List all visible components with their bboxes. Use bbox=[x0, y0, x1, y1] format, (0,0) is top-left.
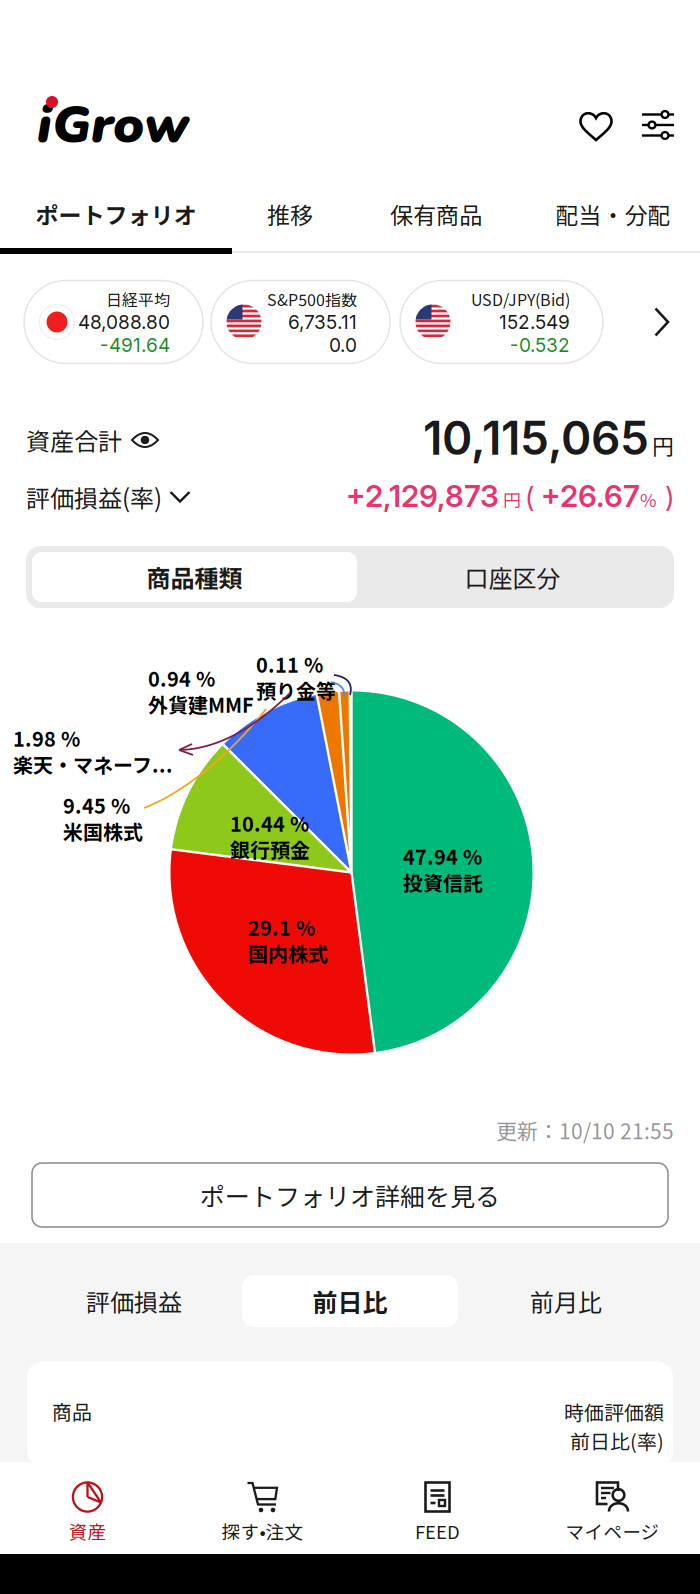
staticText: 資産合計 bbox=[26, 423, 122, 457]
button[interactable]: More markets bbox=[653, 307, 670, 337]
staticText: 円 bbox=[652, 429, 674, 461]
staticText: 6,735.11 bbox=[288, 311, 357, 334]
staticText: 配当・分配 bbox=[555, 197, 670, 231]
staticText: 9.45 % bbox=[63, 790, 130, 819]
button[interactable]: 推移 bbox=[235, 186, 345, 242]
button[interactable]: 保有商品 bbox=[361, 186, 511, 242]
staticText: 更新：10/10 21:55 bbox=[496, 1115, 674, 1145]
staticText: 10,115,065 bbox=[423, 410, 649, 466]
staticText: S&P500指数 bbox=[267, 287, 357, 311]
staticText: 前月比 bbox=[530, 1284, 602, 1318]
staticText: マイページ bbox=[565, 1518, 659, 1544]
staticText: 資産 bbox=[68, 1518, 106, 1544]
button[interactable]: Settings bbox=[642, 110, 674, 139]
staticText: 米国株式 bbox=[63, 816, 143, 845]
staticText: 日経平均 bbox=[106, 287, 170, 311]
staticText: FEED bbox=[415, 1518, 460, 1544]
staticText: 0.0 bbox=[329, 334, 357, 357]
staticText: 前日比(率) bbox=[570, 1426, 664, 1455]
button[interactable]: Hide balance bbox=[131, 430, 159, 450]
staticText: 楽天・マネーフ... bbox=[13, 749, 173, 778]
button[interactable]: S&P500指数 bbox=[211, 280, 390, 363]
staticText: 商品種類 bbox=[146, 560, 242, 594]
staticText: 銀行預金 bbox=[230, 834, 310, 863]
button[interactable]: USD/JPY(Bid) bbox=[400, 280, 603, 363]
button[interactable]: Expand bbox=[169, 490, 191, 504]
staticText: % bbox=[640, 486, 657, 512]
button[interactable]: 前月比 bbox=[458, 1275, 674, 1327]
button[interactable]: 前日比 bbox=[242, 1275, 458, 1327]
staticText: +2,129,873 bbox=[346, 478, 499, 514]
button[interactable]: ポートフォリオ詳細を見る bbox=[32, 1163, 668, 1227]
staticText: -491.64 bbox=[100, 334, 170, 357]
staticText: USD/JPY(Bid) bbox=[471, 287, 570, 311]
staticText: 47.94 % bbox=[403, 841, 482, 870]
staticText: -0.532 bbox=[510, 334, 570, 357]
staticText: 前日比 bbox=[312, 1283, 387, 1319]
staticText: +26.67 bbox=[534, 478, 640, 514]
staticText: 円 bbox=[499, 486, 525, 512]
staticText: 外貨建MMF bbox=[148, 689, 254, 718]
button[interactable]: 評価損益 bbox=[26, 1275, 242, 1327]
button[interactable]: 口座区分 bbox=[357, 552, 668, 602]
staticText: ポートフォリオ詳細を見る bbox=[200, 1177, 500, 1213]
staticText: 0.94 % bbox=[148, 663, 215, 692]
staticText: 152.549 bbox=[499, 311, 570, 334]
button[interactable]: 日経平均 bbox=[24, 280, 203, 363]
button[interactable]: 資産 bbox=[0, 1462, 175, 1554]
button[interactable]: ポートフォリオ bbox=[0, 186, 232, 242]
staticText: 時価評価額 bbox=[564, 1397, 664, 1426]
staticText: iGrow bbox=[37, 89, 189, 160]
staticText: 投資信託 bbox=[403, 867, 483, 896]
staticText: ポートフォリオ bbox=[35, 197, 196, 231]
button[interactable]: FEED bbox=[350, 1462, 525, 1554]
staticText: 口座区分 bbox=[464, 560, 560, 594]
staticText: 10.44 % bbox=[230, 808, 309, 837]
staticText: 国内株式 bbox=[248, 938, 328, 967]
staticText: 0.11 % bbox=[256, 649, 323, 678]
staticText: 推移 bbox=[267, 197, 313, 231]
staticText: 商品 bbox=[52, 1396, 92, 1425]
staticText: 48,088.80 bbox=[78, 311, 170, 334]
button[interactable]: 探す•注文 bbox=[175, 1462, 350, 1554]
staticText: 預り金等 bbox=[256, 675, 336, 704]
staticText: 29.1 % bbox=[248, 912, 315, 941]
staticText: 評価損益(率) bbox=[26, 480, 162, 514]
staticText: 評価損益 bbox=[86, 1284, 182, 1318]
staticText: 保有商品 bbox=[390, 197, 482, 231]
button[interactable]: 商品種類 bbox=[32, 552, 357, 602]
button[interactable]: マイページ bbox=[525, 1462, 700, 1554]
staticText: ) bbox=[657, 480, 674, 514]
button[interactable]: Favorites bbox=[579, 109, 613, 141]
staticText: ( bbox=[525, 480, 534, 514]
staticText: 1.98 % bbox=[13, 723, 80, 752]
button[interactable]: 配当・分配 bbox=[523, 186, 700, 242]
staticText: 探す•注文 bbox=[221, 1518, 303, 1544]
